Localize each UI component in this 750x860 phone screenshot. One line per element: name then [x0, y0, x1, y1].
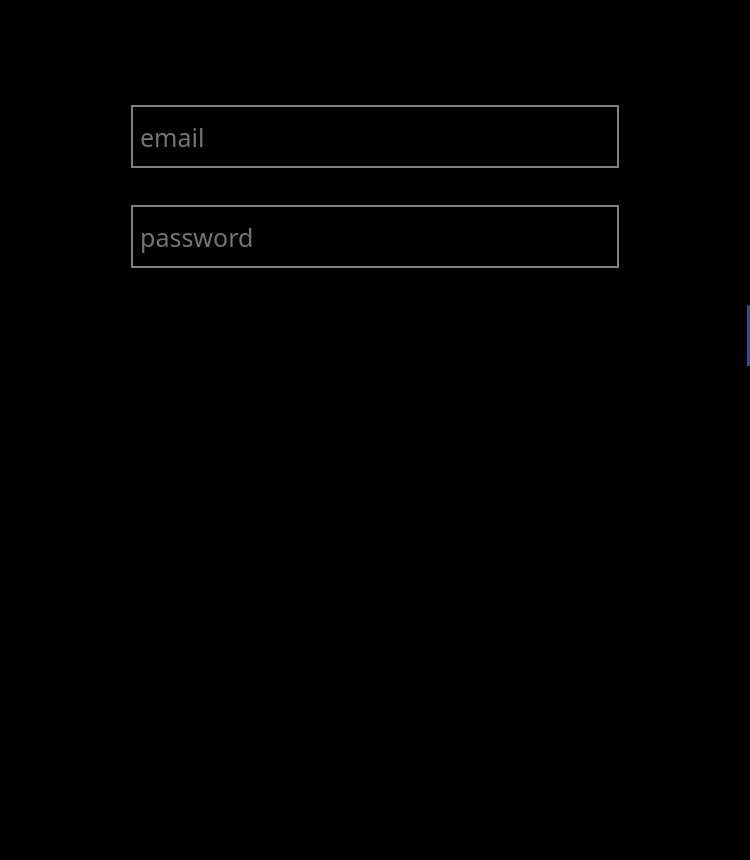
staticText: email	[140, 120, 205, 154]
staticText: password	[140, 220, 254, 254]
button[interactable]: email	[131, 105, 619, 168]
button[interactable]: password	[131, 205, 619, 268]
